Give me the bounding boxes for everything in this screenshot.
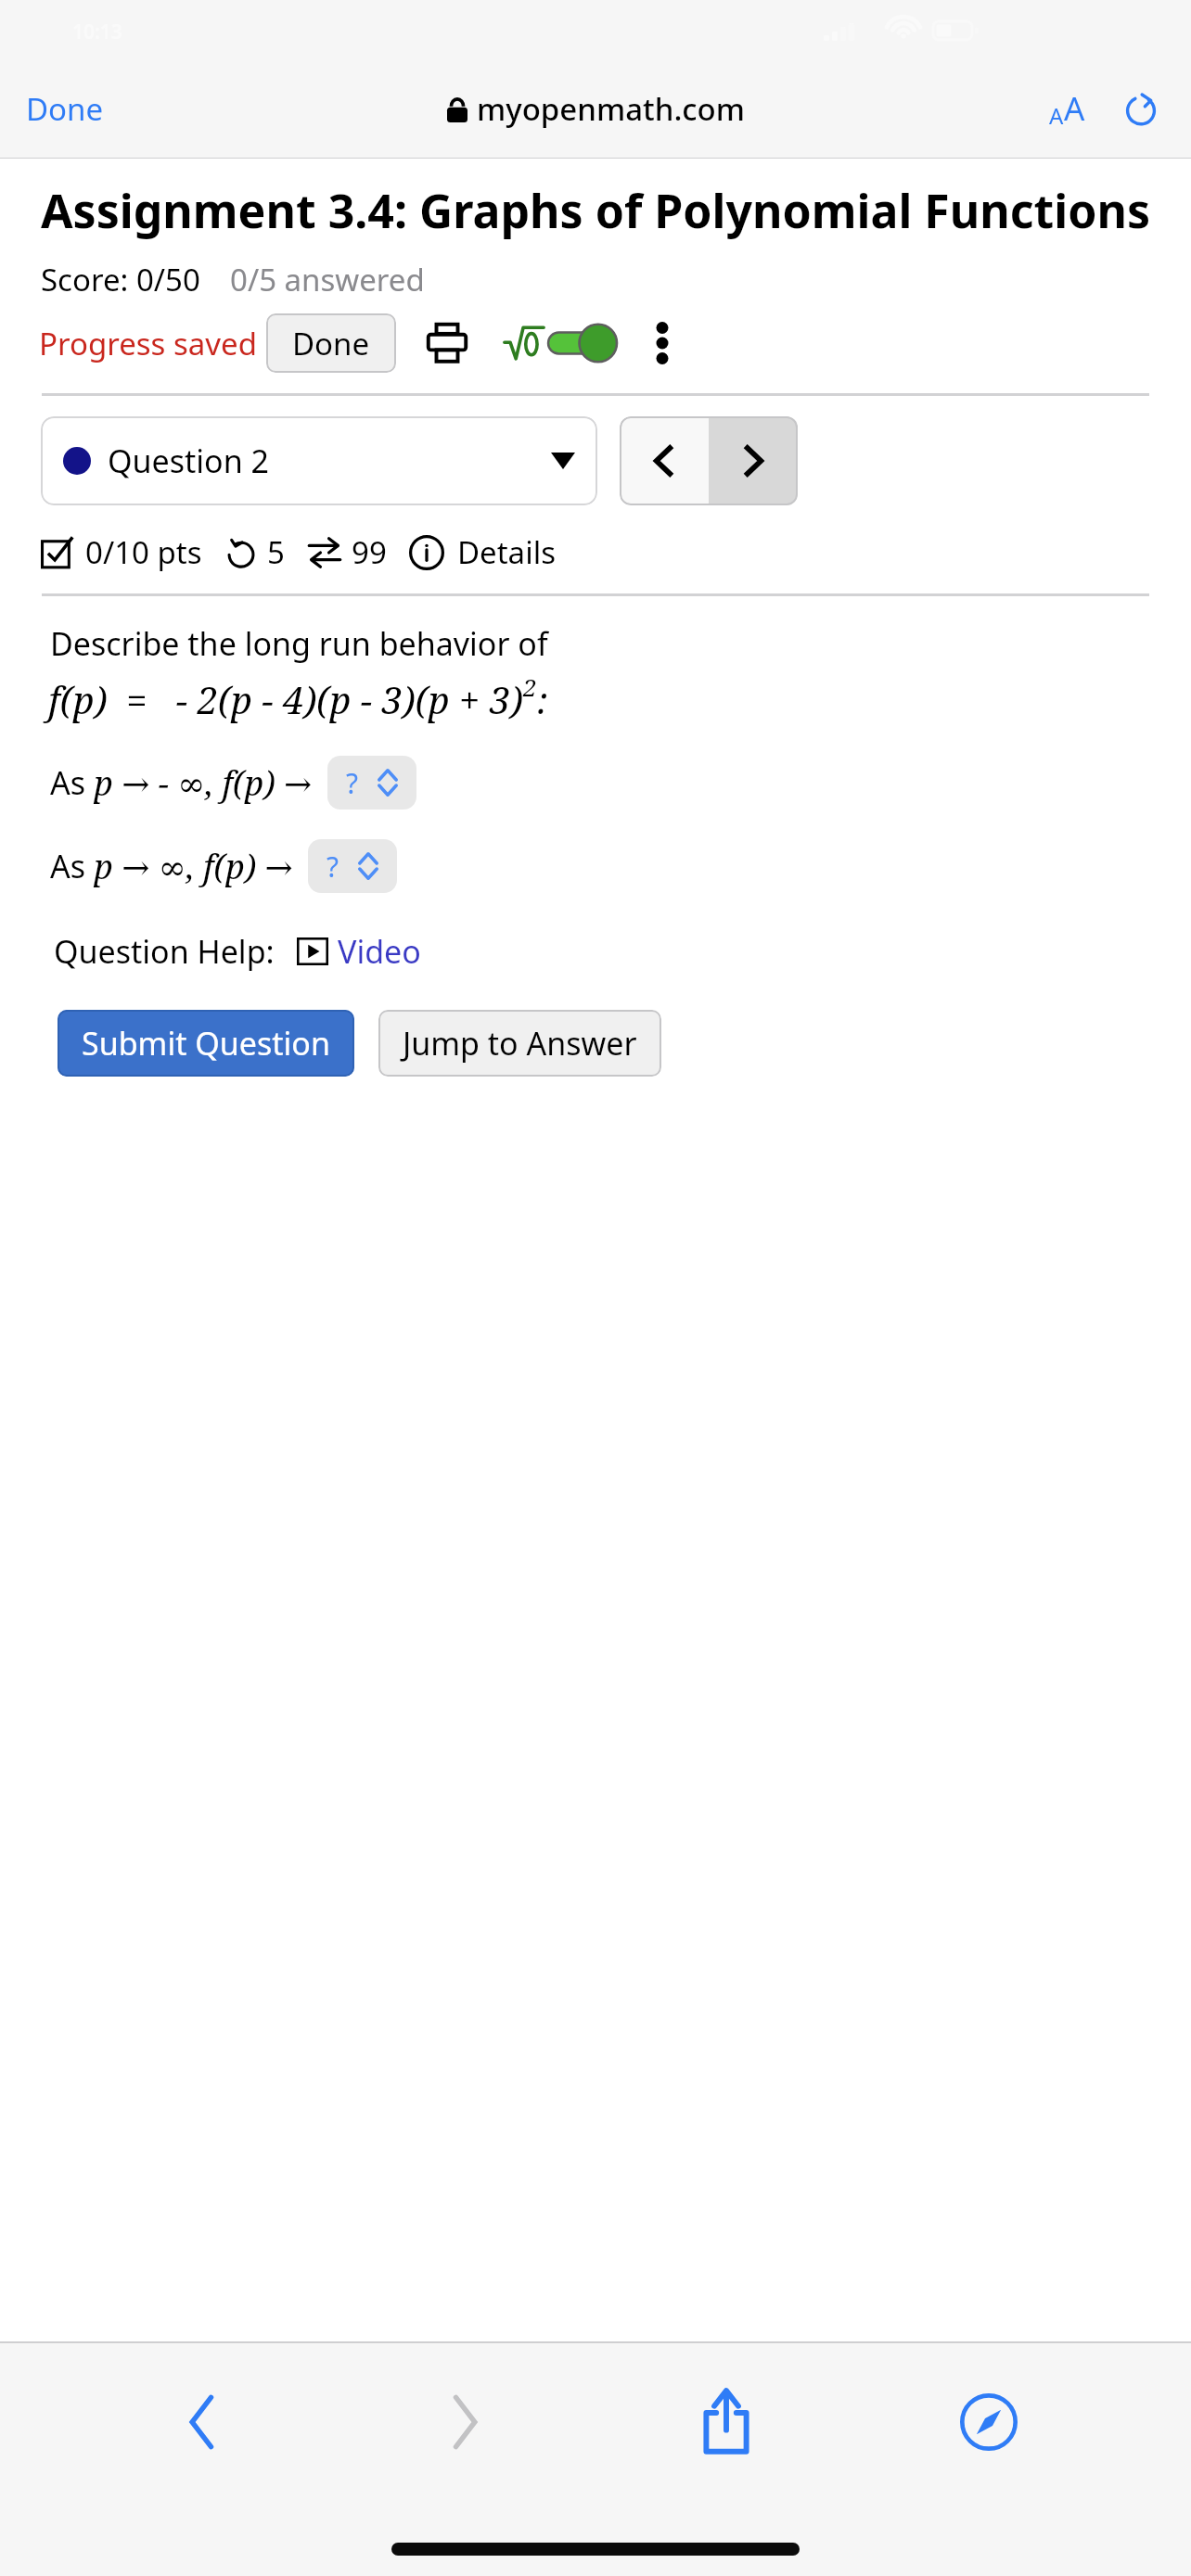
staticText: p → ∞, f(p) → [94,844,293,889]
staticText: ? [346,764,359,802]
button[interactable]: Video [297,926,421,976]
staticText: Jump to Answer [403,1022,637,1065]
staticText: Score: 0/50 [41,259,200,300]
staticText: As [50,761,94,804]
staticText: Done [292,323,370,364]
staticText: A [1064,86,1085,131]
button[interactable]: Done [266,313,396,373]
button[interactable]: myopenmath.com [432,83,760,135]
staticText: Progress saved [39,323,257,364]
button[interactable]: Jump to Answer [378,1010,661,1077]
button[interactable]: Open in Safari [928,2362,1049,2482]
button[interactable]: Toggle math keyboard [500,319,621,367]
staticText: f(p) = − 2(p − 4)(p − 3)(p + 3) [48,674,523,724]
staticText: Video [338,930,421,973]
staticText: Done [26,88,104,130]
staticText: Describe the long run behavior of [50,622,548,665]
staticText: p → − ∞, f(p) → [94,760,313,806]
button[interactable]: Back [142,2362,263,2482]
staticText: A [1049,100,1064,131]
staticText: ? [327,848,339,886]
staticText: Assignment 3.4: Graphs of Polynomial Fun… [41,179,1151,242]
staticText: Details [457,531,556,573]
staticText: Question Help: [54,930,275,973]
staticText: As [50,845,94,887]
button[interactable]: ? [327,756,416,810]
button[interactable]: Print assignment [422,318,472,368]
staticText: 2 [523,670,537,703]
staticText: : [537,674,548,724]
staticText: 5 [267,531,285,573]
button[interactable]: Share [666,2362,787,2482]
staticText: 0/5 answered [230,259,425,300]
button[interactable]: Reload page [1115,83,1167,134]
button[interactable]: Question 2 [41,416,597,505]
button[interactable]: Text size options [1040,77,1095,140]
staticText: myopenmath.com [477,88,745,130]
staticText: Question 2 [108,440,269,482]
button[interactable]: Done [13,81,117,137]
staticText: 0/10 pts [85,531,202,573]
button[interactable]: Submit Question [58,1010,354,1077]
button[interactable]: ? [308,839,397,893]
button[interactable]: Details [409,528,556,577]
staticText: Submit Question [82,1022,330,1065]
button[interactable]: Next question [709,416,798,505]
button[interactable]: Previous question [620,416,709,505]
staticText: 99 [352,531,387,573]
button[interactable]: Forward [404,2362,525,2482]
button[interactable]: More options [647,315,678,371]
